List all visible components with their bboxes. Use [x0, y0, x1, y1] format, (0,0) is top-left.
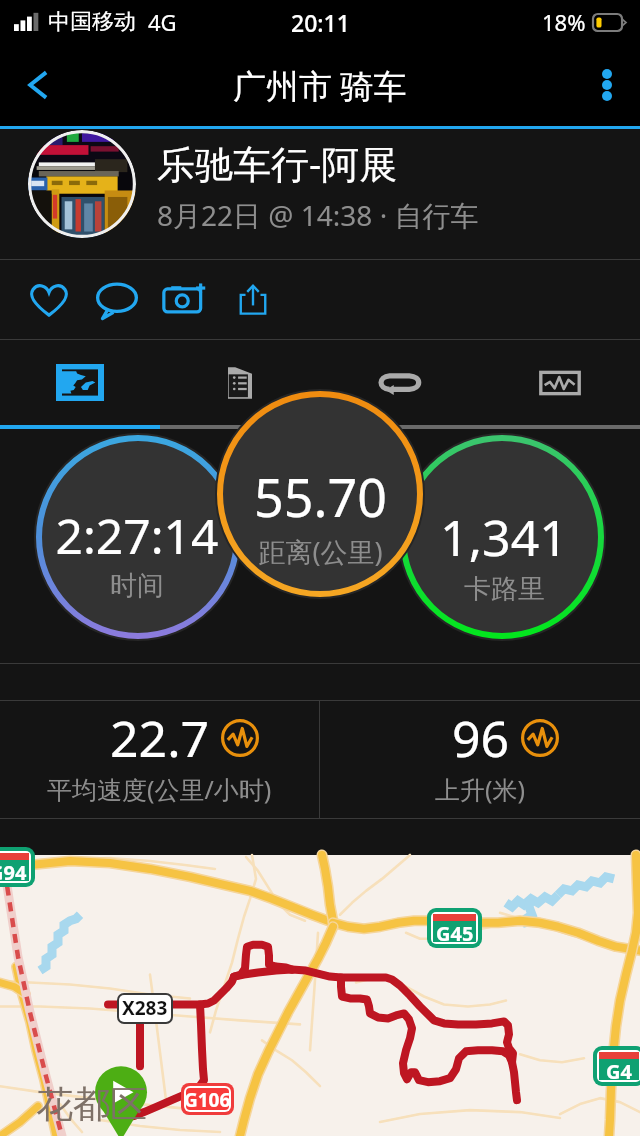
staticText: 平均速度(公里/小时) [47, 772, 272, 806]
staticText: 1,341 [440, 503, 568, 571]
staticText: G106 [186, 1088, 229, 1109]
staticText: 上升(米) [435, 772, 526, 806]
staticText: 96 [452, 704, 510, 772]
button[interactable]: Back [0, 44, 76, 126]
staticText: 4G [148, 7, 177, 37]
button[interactable]: 乐驰车行-阿展 [0, 129, 640, 259]
button[interactable]: Route map [0, 855, 640, 1136]
button[interactable]: More options [574, 44, 640, 126]
staticText: 2:27:14 [55, 503, 219, 568]
staticText: 55.70 [254, 461, 387, 532]
button[interactable]: Analysis [480, 340, 640, 425]
staticText: 18% [542, 7, 586, 37]
staticText: 8月22日 @ 14:38 · 自行车 [157, 196, 479, 234]
staticText: 花都区 [36, 1081, 147, 1128]
button[interactable]: Comment [83, 260, 151, 339]
button[interactable]: Map [0, 340, 160, 425]
button[interactable]: 96 [320, 701, 640, 818]
button[interactable]: Share [219, 260, 287, 339]
button[interactable]: Add photo [151, 260, 219, 339]
button[interactable]: 22.7 [0, 701, 319, 818]
staticText: G45 [436, 920, 474, 941]
button[interactable]: Laps [320, 340, 480, 425]
staticText: X283 [122, 995, 168, 1021]
button[interactable]: Details [160, 340, 320, 425]
staticText: 距离(公里) [258, 533, 383, 570]
button[interactable]: Like [15, 260, 83, 339]
staticText: G4 [606, 1058, 632, 1079]
staticText: 时间 [110, 569, 164, 603]
staticText: 卡路里 [464, 572, 545, 606]
staticText: 乐驰车行-阿展 [157, 137, 398, 189]
staticText: G94 [0, 859, 27, 880]
staticText: 22.7 [110, 704, 210, 772]
staticText: 20:11 [291, 7, 350, 38]
staticText: 中国移动 [48, 8, 136, 36]
staticText: 广州市 骑车 [233, 63, 407, 108]
